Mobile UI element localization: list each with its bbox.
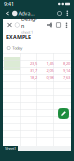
- button[interactable]: Search: [55, 8, 64, 19]
- staticText: 2,05: [46, 68, 53, 73]
- button[interactable]: Present: [54, 19, 63, 31]
- staticText: sheet 1: [21, 29, 33, 35]
- staticText: 9:41: [4, 0, 14, 8]
- button[interactable]: Sheet1: [3, 146, 18, 151]
- staticText: 0,98: [46, 75, 53, 80]
- staticText: EXAMPLE: [6, 33, 31, 41]
- staticText: Design: [21, 15, 37, 29]
- button[interactable]: Share: [45, 19, 54, 31]
- staticText: Sheet1: [5, 146, 16, 151]
- button[interactable]: Edit: [58, 108, 69, 119]
- button[interactable]: More: [64, 8, 71, 19]
- staticText: 1,45: [46, 61, 53, 66]
- button[interactable]: More options: [63, 19, 70, 31]
- button[interactable]: Back: [3, 8, 12, 19]
- staticText: Adva…: [17, 10, 34, 17]
- staticText: 18,2: [30, 75, 37, 80]
- staticText: 8,20: [63, 61, 70, 66]
- staticText: 9,14: [63, 68, 70, 73]
- staticText: 23,5: [30, 61, 37, 66]
- staticText: 7,63: [63, 75, 70, 80]
- staticText: Today: [12, 45, 22, 51]
- button[interactable]: Close: [4, 19, 15, 31]
- staticText: 31,7: [30, 68, 37, 73]
